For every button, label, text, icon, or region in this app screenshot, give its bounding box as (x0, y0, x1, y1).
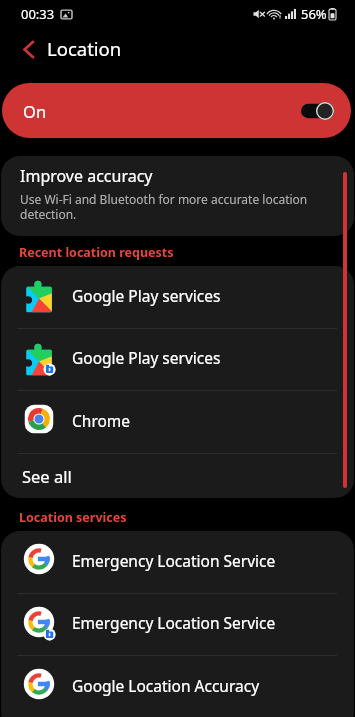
staticText: Google Location Accuracy (72, 675, 260, 696)
staticText: Google Play services (72, 347, 221, 368)
staticText: Location services (19, 509, 127, 526)
staticText: Emergency Location Service (72, 550, 276, 571)
button[interactable]: Emergency Location Service (1, 594, 354, 655)
button[interactable]: Google Play services (1, 266, 354, 328)
button[interactable]: Back (12, 33, 44, 65)
staticText: Recent location requests (19, 244, 174, 261)
button[interactable]: Chrome (1, 391, 354, 453)
staticText: On (23, 100, 47, 122)
button[interactable]: See all (1, 454, 354, 498)
staticText: 00:33 (21, 5, 55, 23)
button[interactable]: Improve accuracy (1, 156, 354, 236)
staticText: 56% (301, 5, 327, 23)
button[interactable]: Google Play services (1, 329, 354, 390)
staticText: Emergency Location Service (72, 612, 276, 633)
staticText: Location (47, 36, 122, 61)
button[interactable]: On (2, 83, 351, 138)
staticText: Chrome (72, 410, 131, 431)
staticText: See all (22, 465, 72, 487)
staticText: Use Wi-Fi and Bluetooth for more accurat… (20, 191, 310, 222)
staticText: Improve accuracy (20, 165, 153, 187)
button[interactable]: Google Location Accuracy (1, 656, 354, 717)
staticText: Google Play services (72, 285, 221, 306)
button[interactable]: Emergency Location Service (1, 531, 354, 593)
